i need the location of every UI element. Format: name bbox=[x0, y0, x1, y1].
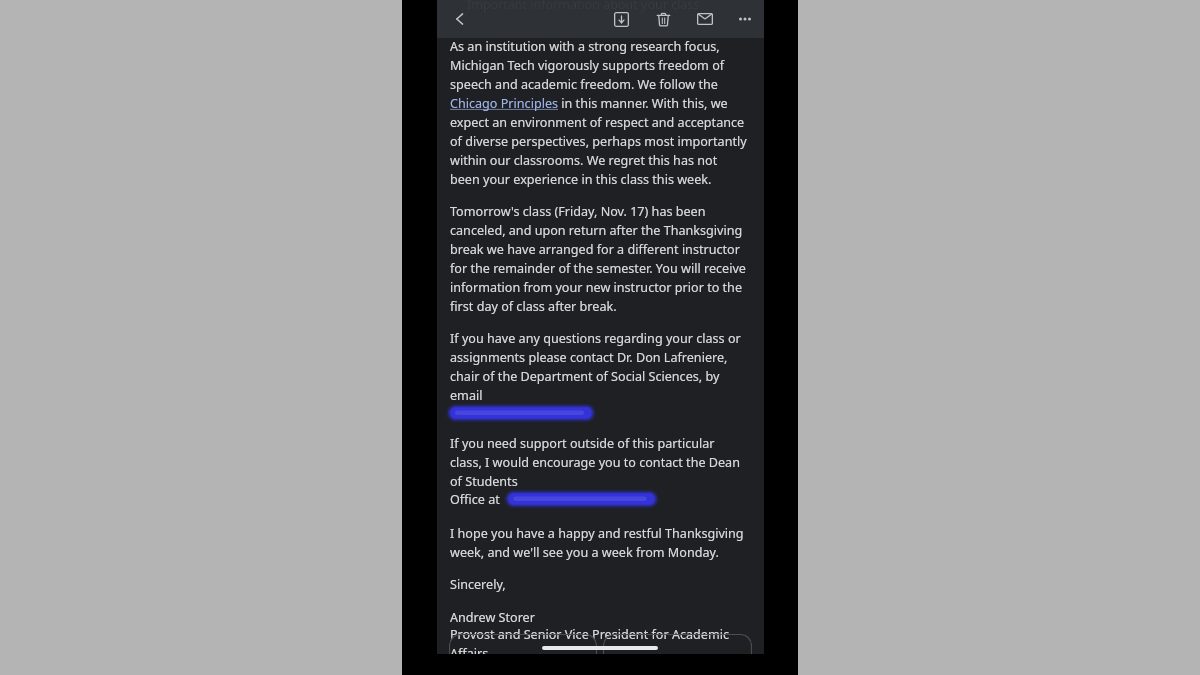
staticText: Andrew Storer bbox=[450, 609, 535, 626]
staticText: Office at bbox=[450, 491, 504, 508]
button[interactable] bbox=[449, 634, 597, 654]
staticText: I hope you have a happy and restful Than… bbox=[450, 525, 749, 560]
button[interactable]: Mark as unread bbox=[688, 2, 722, 36]
staticText: Important information about your class bbox=[467, 0, 700, 13]
staticText: Tomorrow's class (Friday, Nov. 17) has b… bbox=[450, 203, 749, 314]
button[interactable] bbox=[603, 634, 752, 654]
button[interactable]: More options bbox=[728, 2, 762, 36]
button[interactable]: Delete bbox=[646, 2, 680, 36]
staticText: If you need support outside of this part… bbox=[450, 435, 749, 489]
button[interactable]: Back bbox=[441, 0, 479, 38]
button[interactable]: Archive bbox=[604, 2, 638, 36]
staticText: If you have any questions regarding your… bbox=[450, 330, 749, 403]
staticText: As an institution with a strong research… bbox=[450, 38, 749, 187]
staticText: Provost and Senior Vice President for Ac… bbox=[450, 626, 749, 654]
staticText: Sincerely, bbox=[450, 576, 506, 593]
